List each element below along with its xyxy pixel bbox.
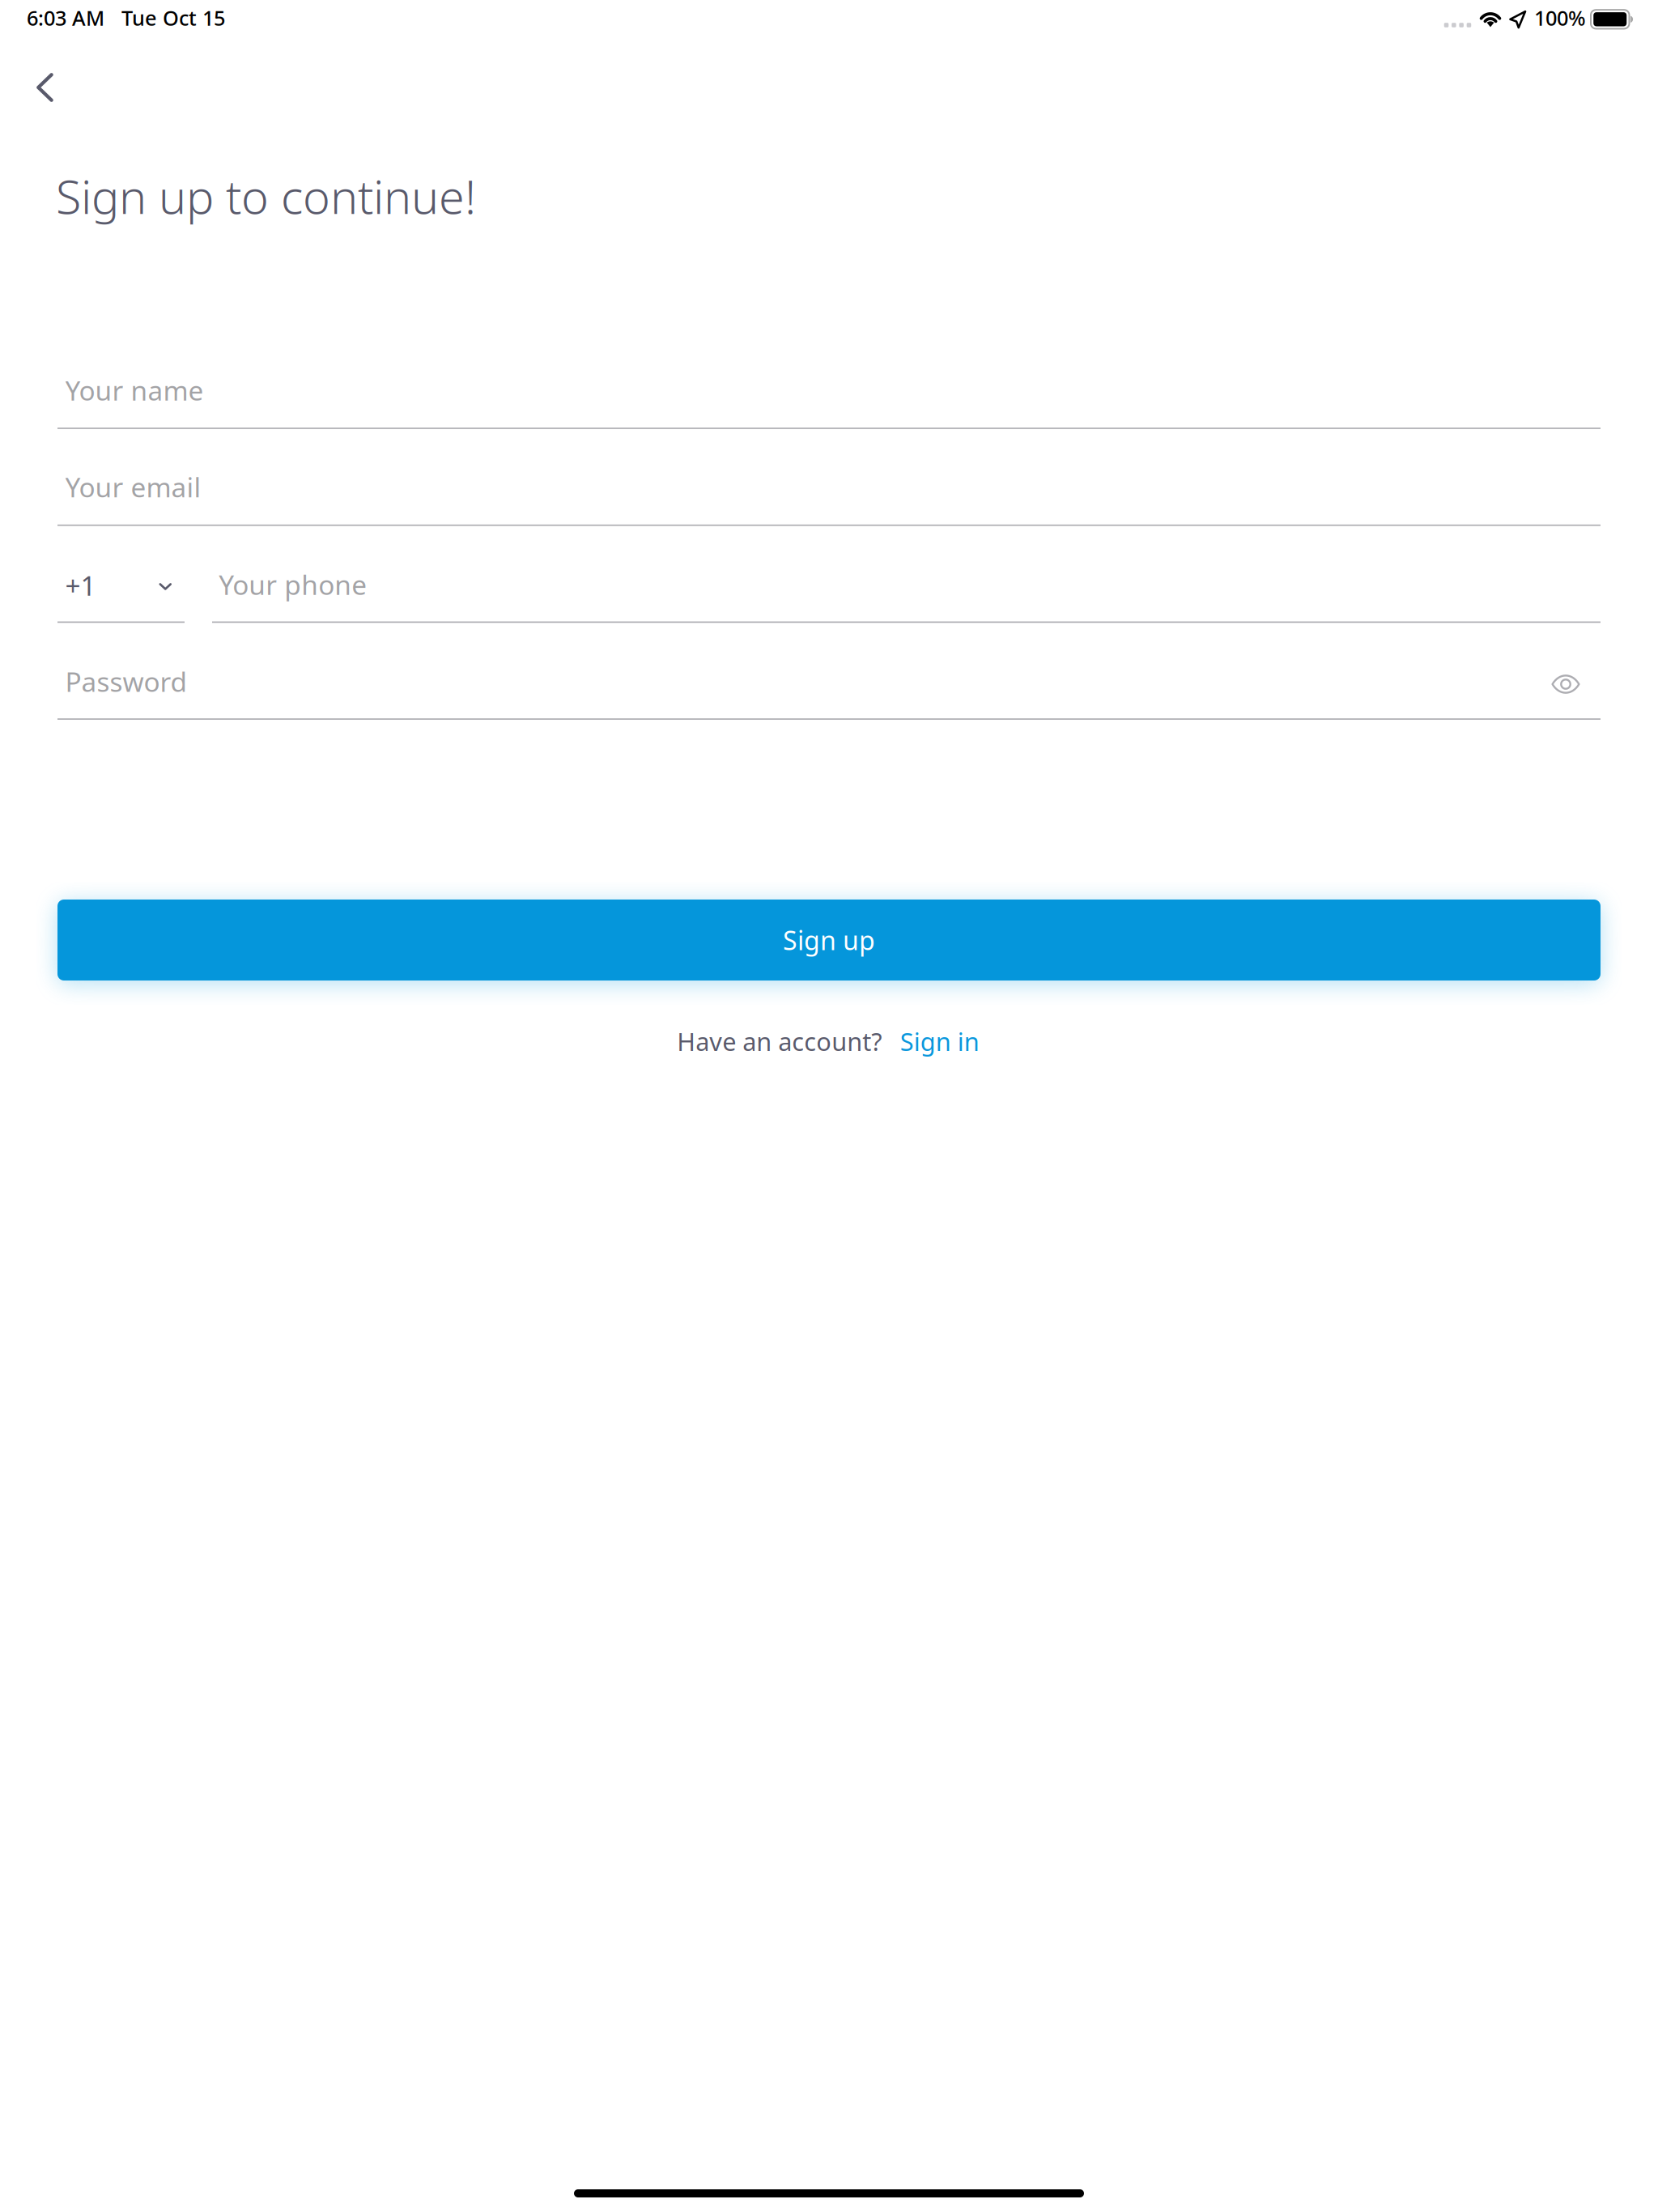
staticText: 6:03 AM Tue Oct 15 [27,4,225,31]
staticText: Sign in [900,1025,979,1058]
staticText: Password [65,664,187,699]
button[interactable]: Show password [1527,652,1605,717]
button[interactable]: Country code +1 [57,556,185,616]
staticText: Sign up to continue! [56,165,476,227]
staticText: Your name [65,372,204,408]
staticText: Your phone [219,566,367,602]
staticText: Your email [65,469,201,505]
button[interactable]: Your phone [212,557,1601,627]
staticText: Sign up [783,923,875,957]
button[interactable]: Your name [57,364,1601,433]
button[interactable]: Sign in [898,1018,981,1064]
staticText: +1 [65,567,96,603]
button[interactable]: Back [17,53,106,122]
button[interactable]: Password [57,654,1503,724]
button[interactable]: Your email [57,460,1601,530]
staticText: Have an account? [677,1025,882,1058]
staticText: 100% [1534,4,1586,31]
button[interactable]: Sign up [57,900,1601,981]
